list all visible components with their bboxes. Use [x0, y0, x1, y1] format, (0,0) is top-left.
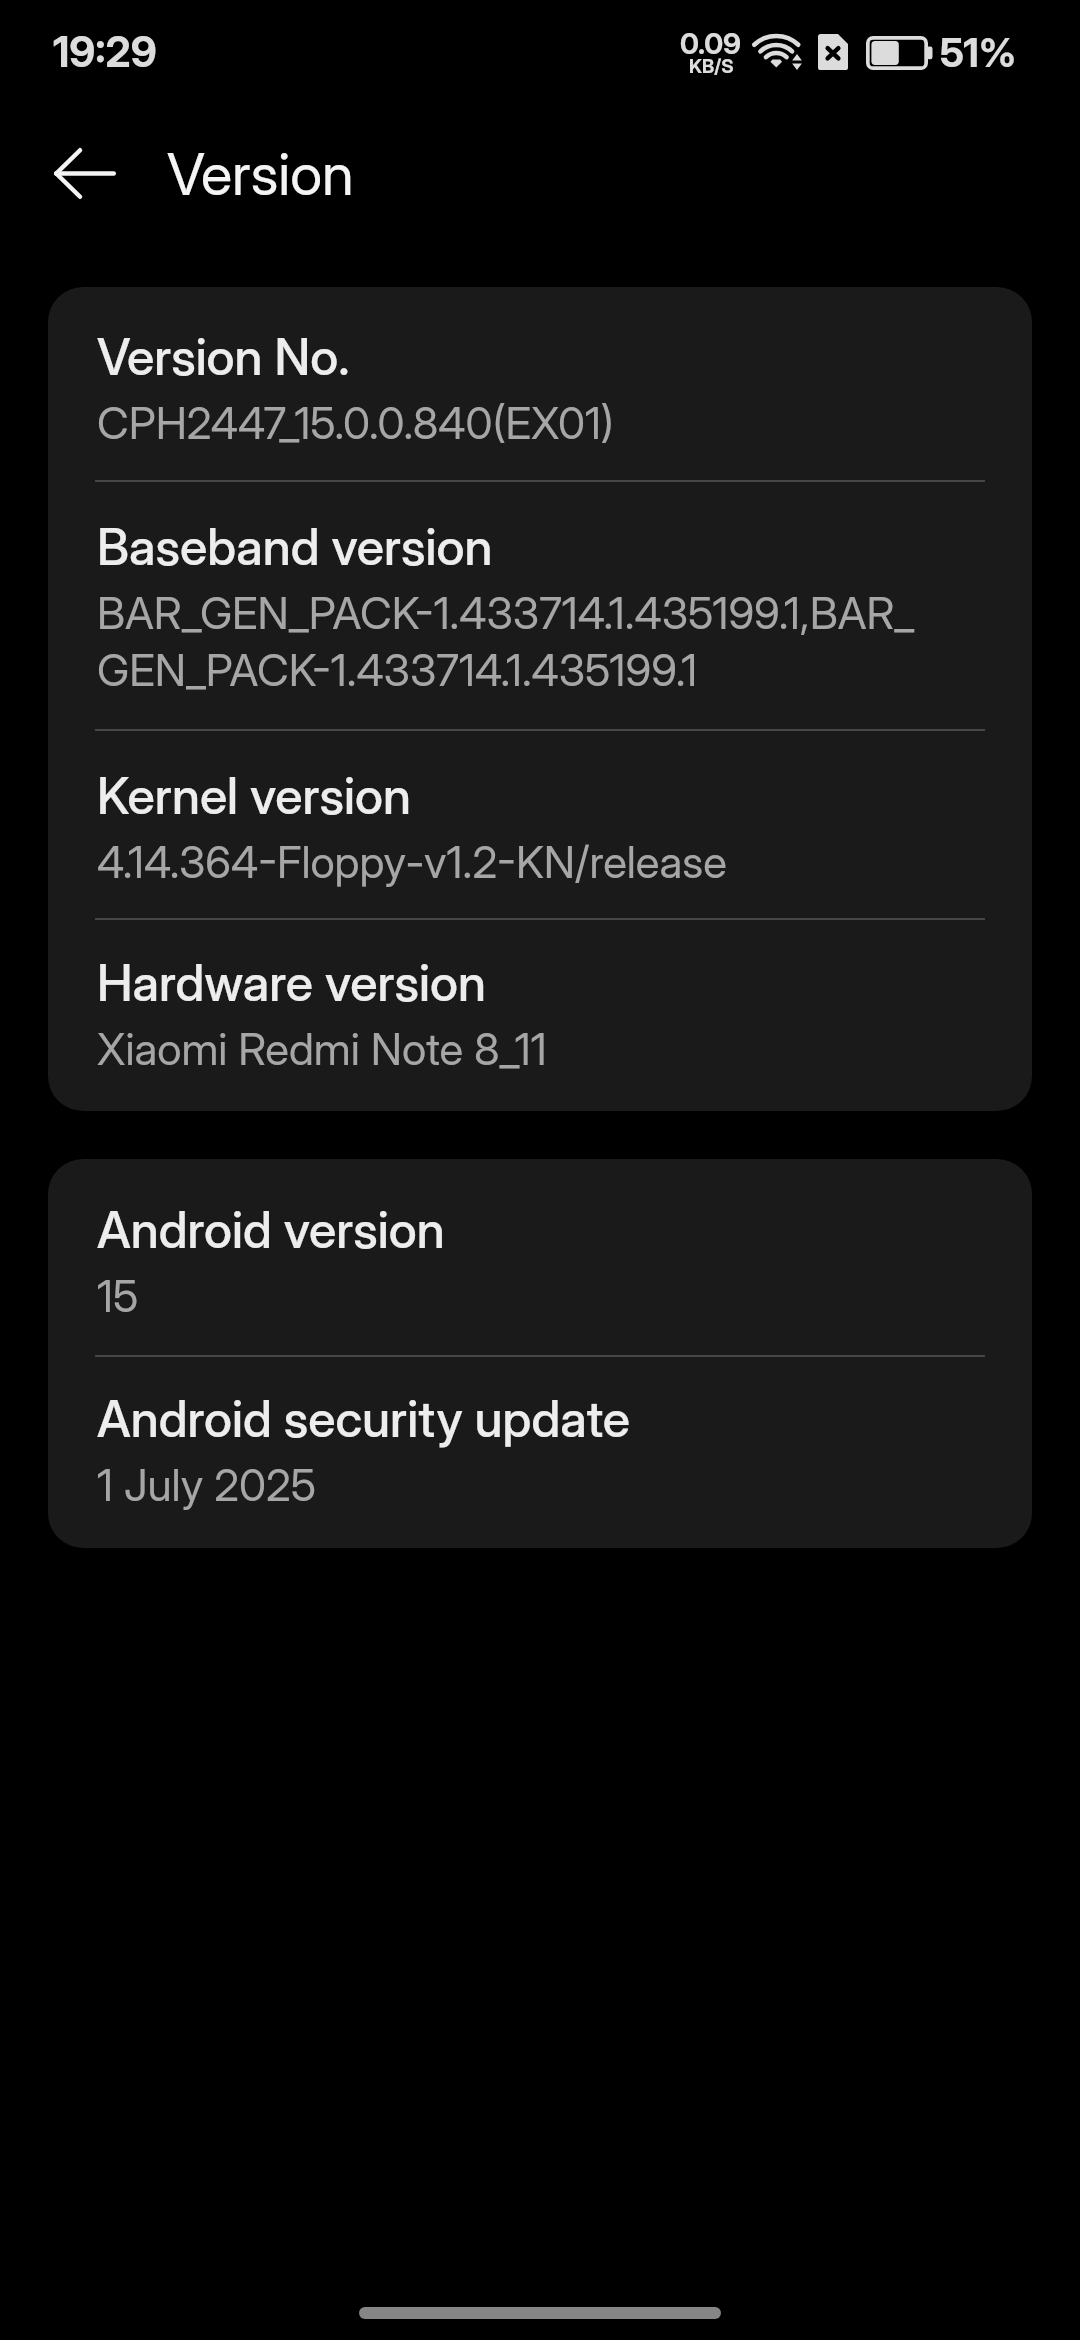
staticText: 19:29	[53, 26, 157, 77]
staticText: Xiaomi Redmi Note 8_11	[97, 1022, 547, 1075]
button[interactable]: Android version	[48, 1159, 1032, 1357]
staticText: Android version	[97, 1200, 445, 1260]
staticText: KB/S	[689, 55, 734, 78]
staticText: Hardware version	[97, 953, 486, 1013]
button[interactable]: Version No.	[48, 287, 1032, 482]
button[interactable]: Baseband version	[48, 482, 1032, 731]
staticText: 0.09	[680, 26, 742, 61]
staticText: Version	[167, 139, 354, 209]
staticText: 4.14.364-Floppy-v1.2-KN/release	[97, 835, 727, 888]
staticText: Version No.	[97, 327, 350, 387]
button[interactable]: Android security update	[48, 1357, 1032, 1548]
button[interactable]: Kernel version	[48, 731, 1032, 920]
button[interactable]: Hardware version	[48, 920, 1032, 1111]
staticText: Baseband version	[97, 517, 493, 577]
staticText: BAR_GEN_PACK-1.433714.1.435199.1,BAR_ GE…	[97, 586, 915, 697]
staticText: Android security update	[97, 1389, 630, 1449]
staticText: 1 July 2025	[97, 1458, 317, 1511]
staticText: Kernel version	[97, 766, 411, 826]
button[interactable]: Back	[31, 126, 139, 218]
staticText: 51%	[940, 28, 1017, 76]
staticText: CPH2447_15.0.0.840(EX01)	[97, 396, 615, 449]
staticText: 15	[97, 1269, 139, 1322]
